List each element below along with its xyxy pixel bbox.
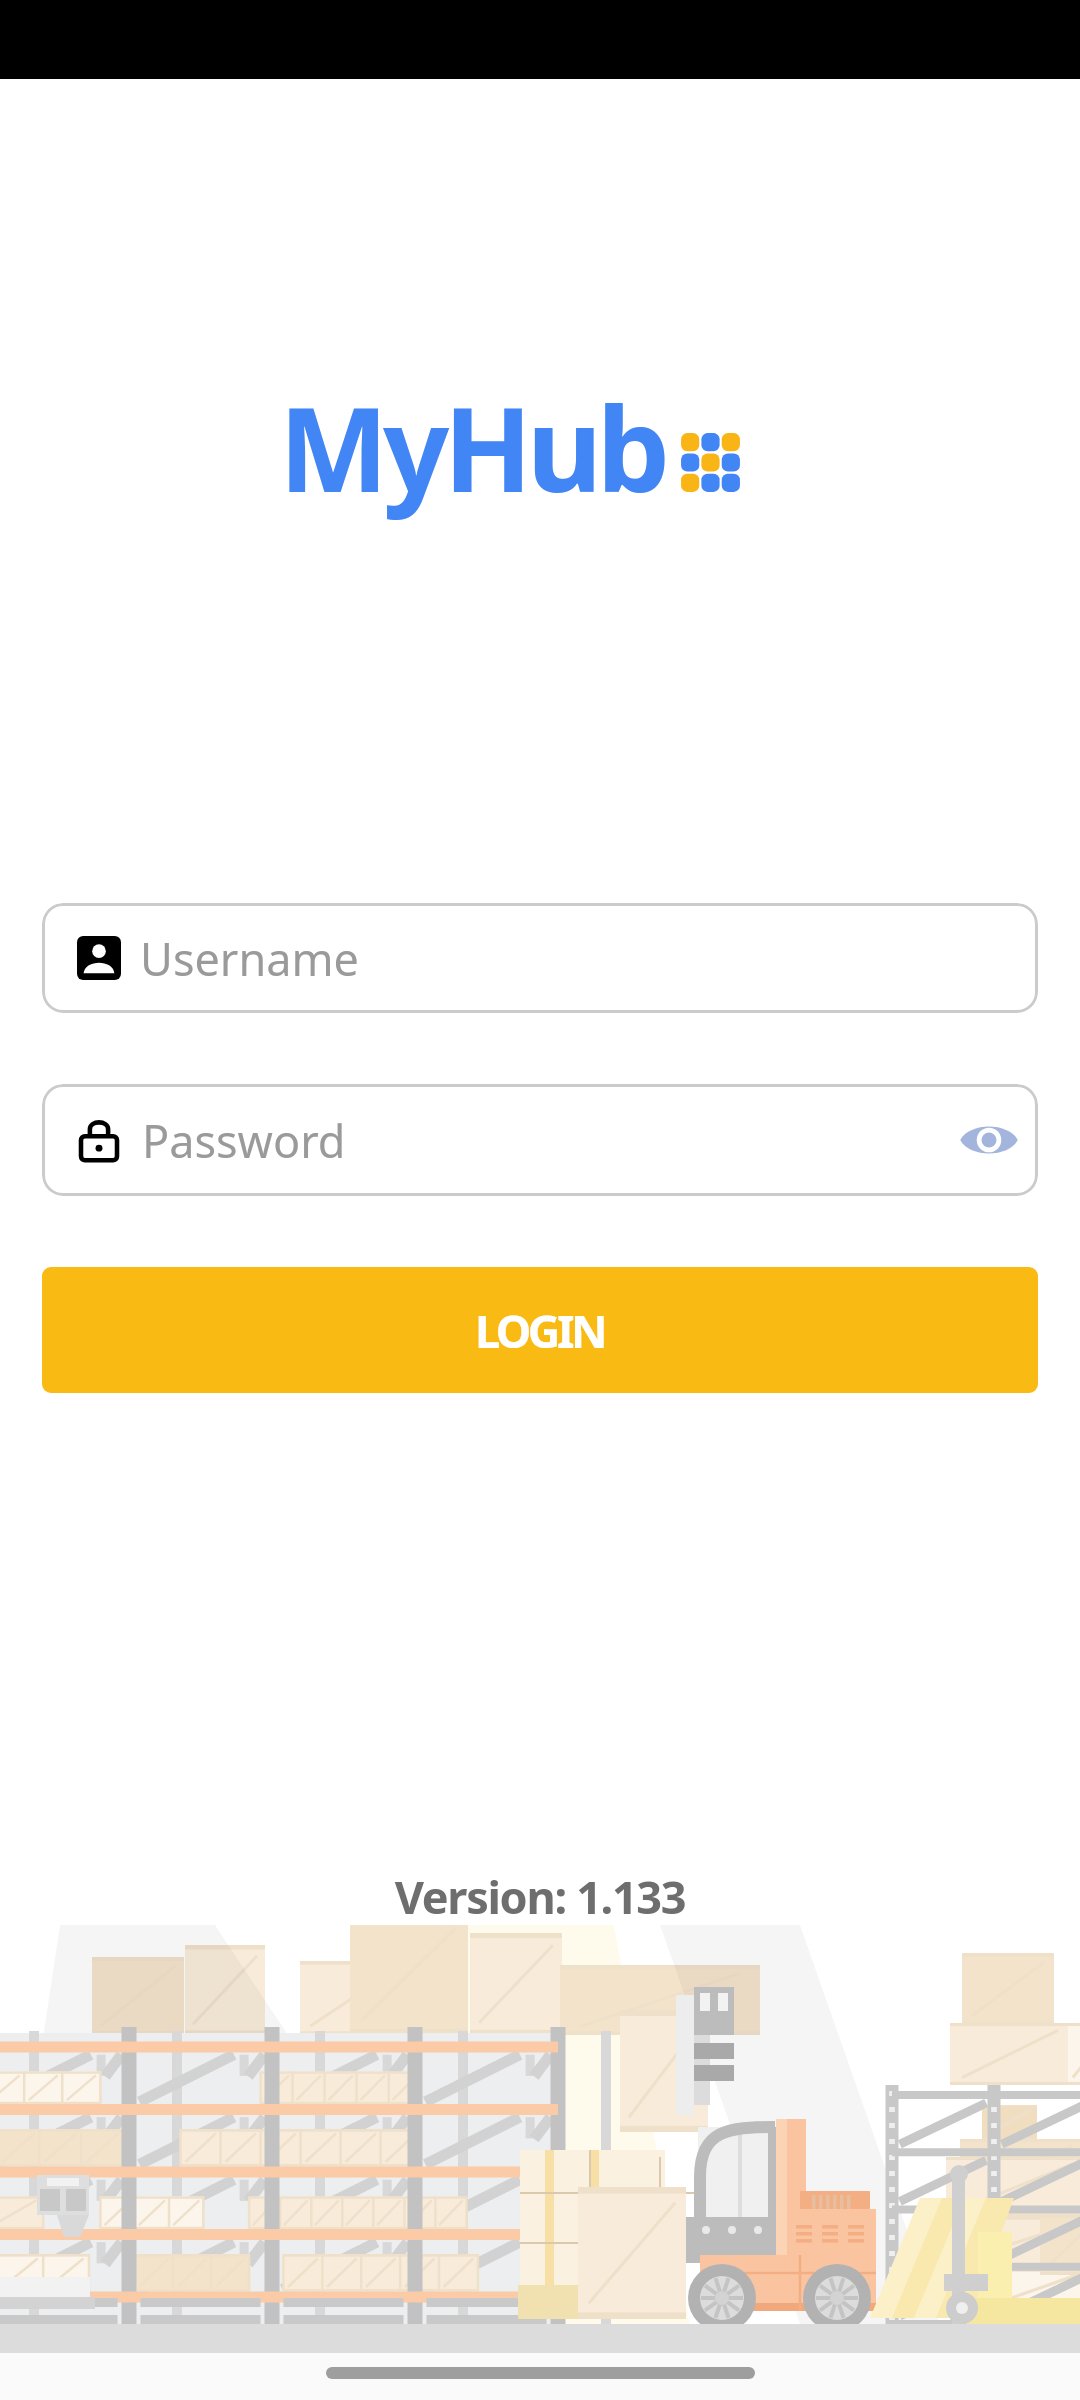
staticText: LOGIN bbox=[475, 1300, 605, 1361]
button[interactable]: Username bbox=[42, 903, 1038, 1013]
button[interactable]: Show password bbox=[940, 1091, 1038, 1189]
button[interactable]: Password bbox=[42, 1084, 1038, 1196]
staticText: MyHub bbox=[279, 368, 665, 526]
staticText: Password bbox=[142, 1110, 940, 1171]
staticText: Version: 1.133 bbox=[0, 1866, 1080, 1927]
staticText: Username bbox=[140, 928, 359, 989]
button[interactable]: LOGIN bbox=[42, 1267, 1038, 1393]
